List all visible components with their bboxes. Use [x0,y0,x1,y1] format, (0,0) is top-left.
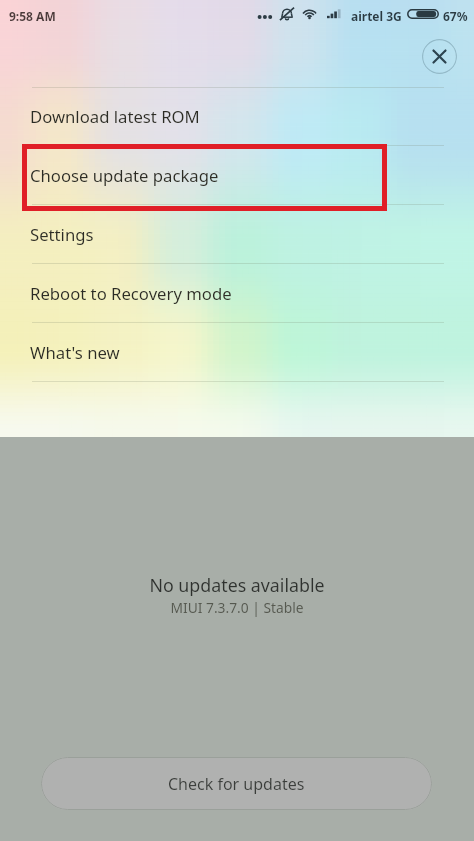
staticText: Download latest ROM [30,105,200,128]
staticText: Check for updates [168,773,305,795]
button[interactable]: Check for updates [41,757,432,810]
staticText: Settings [30,223,94,246]
staticText: airtel 3G [351,8,402,24]
staticText: What's new [30,341,120,364]
staticText: No updates available [149,573,325,597]
staticText: Choose update package [30,164,219,187]
button[interactable]: Download latest ROM [0,87,474,146]
staticText: Reboot to Recovery mode [30,282,232,305]
button[interactable]: What's new [0,323,474,382]
button[interactable]: Reboot to Recovery mode [0,264,474,323]
staticText: MIUI 7.3.7.0 | Stable [170,598,304,617]
button[interactable]: Settings [0,205,474,264]
button[interactable]: Close [422,39,457,74]
staticText: 9:58 AM [9,8,56,24]
staticText: 67% [443,8,468,24]
button[interactable]: Choose update package [0,146,474,205]
